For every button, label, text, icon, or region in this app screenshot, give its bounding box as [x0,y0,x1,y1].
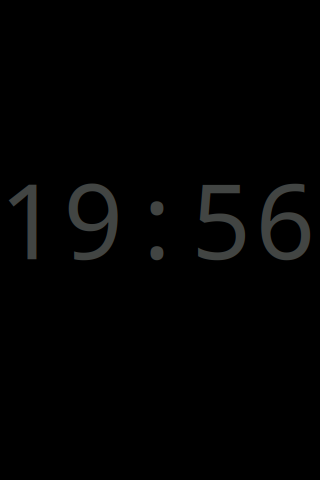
group: 19:56 [0,171,320,309]
